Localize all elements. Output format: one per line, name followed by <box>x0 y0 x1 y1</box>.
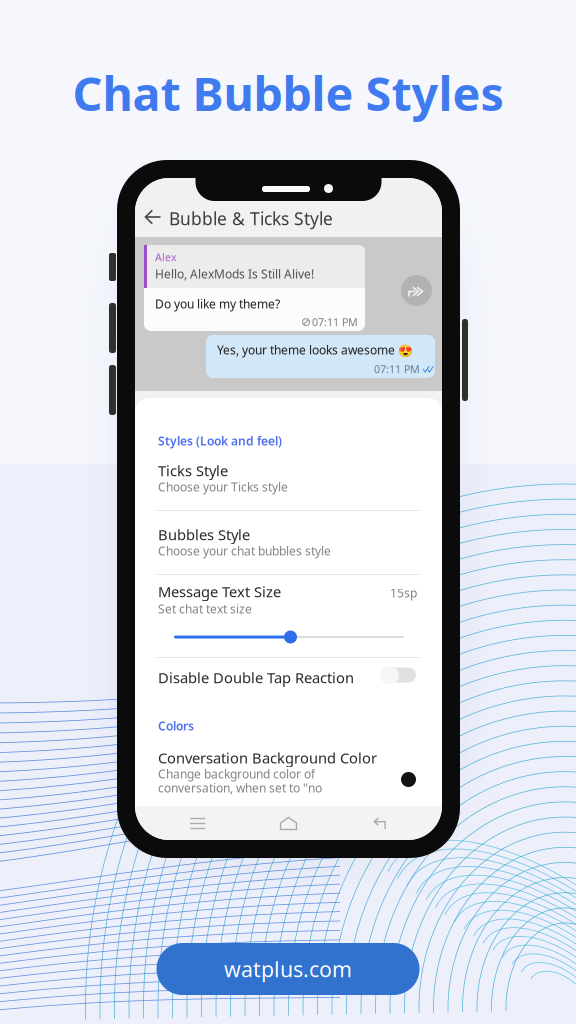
button[interactable]: Conversation Background Color <box>135 748 442 800</box>
staticText: 15sp <box>390 585 417 601</box>
staticText: Disable Double Tap Reaction <box>158 668 354 687</box>
staticText: Choose your chat bubbles style <box>158 543 331 559</box>
button[interactable]: Forward message <box>401 275 432 306</box>
button[interactable]: Bubbles Style <box>158 526 419 543</box>
staticText: Alex <box>155 250 177 264</box>
staticText: Choose your Ticks style <box>158 479 288 495</box>
staticText: Styles (Look and feel) <box>158 433 282 449</box>
button[interactable]: Back <box>134 202 172 232</box>
staticText: Bubble & Ticks Style <box>169 207 333 230</box>
staticText: 07:11 PM <box>374 362 420 376</box>
staticText: Conversation Background Color <box>158 748 377 767</box>
staticText: 07:11 PM <box>312 315 358 329</box>
staticText: Hello, AlexMods Is Still Alive! <box>155 266 314 282</box>
staticText: Do you like my theme? <box>155 296 280 312</box>
button[interactable]: Disable Double Tap Reaction <box>158 669 419 686</box>
button[interactable]: Message Text Size <box>158 583 419 600</box>
staticText: Change background color of <box>158 766 315 782</box>
button[interactable]: Disable Double Tap Reaction toggle <box>377 664 413 686</box>
staticText: watplus.com <box>224 955 352 983</box>
staticText: Colors <box>158 718 194 734</box>
button[interactable]: Recent apps <box>170 809 226 837</box>
staticText: conversation, when set to "no <box>158 780 322 796</box>
staticText: Bubbles Style <box>158 525 250 544</box>
staticText: Ticks Style <box>158 461 228 480</box>
button[interactable]: Back <box>351 809 407 837</box>
staticText: Yes, your theme looks awesome 😍 <box>217 342 413 358</box>
staticText: Chat Bubble Styles <box>72 62 503 124</box>
button[interactable]: Ticks Style <box>158 462 419 479</box>
staticText: Set chat text size <box>158 601 252 617</box>
button[interactable]: Home <box>260 809 316 837</box>
staticText: Message Text Size <box>158 582 281 601</box>
button[interactable]: watplus.com <box>156 943 419 995</box>
